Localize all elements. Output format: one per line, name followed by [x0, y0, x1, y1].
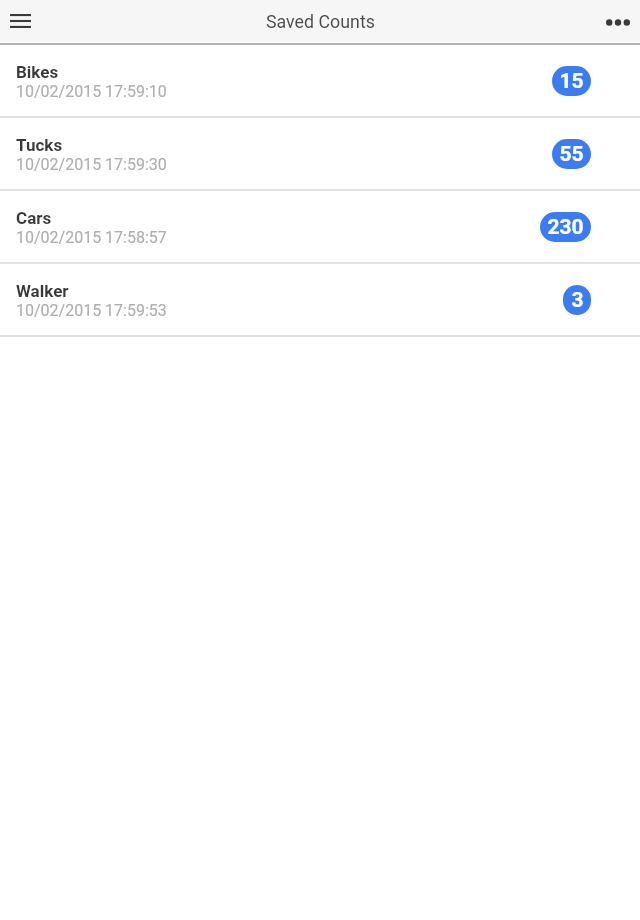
button[interactable]: Cars	[0, 191, 640, 264]
staticText: Walker	[16, 281, 69, 301]
staticText: Cars	[16, 208, 52, 228]
staticText: Bikes	[16, 62, 59, 82]
staticText: 10/02/2015 17:59:30	[16, 155, 167, 174]
staticText: 10/02/2015 17:58:57	[16, 228, 167, 247]
button[interactable]: Walker	[0, 264, 640, 337]
staticText: 15	[559, 69, 584, 94]
button[interactable]: Tucks	[0, 118, 640, 191]
button[interactable]: Open navigation menu	[0, 0, 40, 42]
staticText: 3	[571, 288, 584, 313]
staticText: 230	[547, 215, 584, 240]
staticText: 10/02/2015 17:59:10	[16, 82, 167, 101]
staticText: Saved Counts	[266, 11, 375, 32]
button[interactable]: Bikes	[0, 45, 640, 118]
button[interactable]: More options	[596, 0, 640, 42]
staticText: 10/02/2015 17:59:53	[16, 301, 167, 320]
staticText: Tucks	[16, 135, 63, 155]
staticText: 55	[559, 142, 584, 167]
